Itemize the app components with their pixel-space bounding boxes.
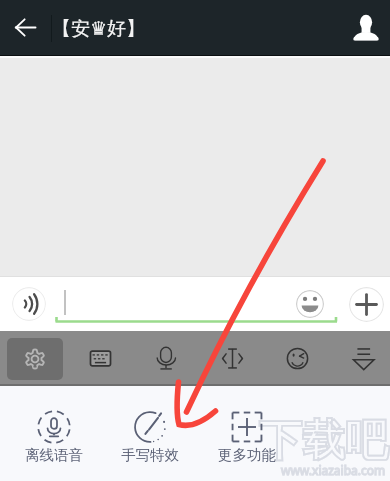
button[interactable]: Stickers [275, 336, 319, 380]
button[interactable]: More features [203, 410, 291, 480]
button[interactable]: More options [349, 287, 384, 322]
button[interactable]: Emoji [296, 290, 324, 318]
button[interactable]: Contact profile [342, 0, 390, 55]
button[interactable]: Hide keyboard [341, 336, 385, 380]
button[interactable]: Offline voice [10, 410, 98, 480]
button[interactable]: Input settings [7, 338, 63, 380]
staticText: 手写特效 [121, 446, 179, 464]
staticText: www.xiazaiba.com [281, 462, 386, 478]
staticText: 【安♛好】 [52, 17, 146, 41]
button[interactable]: Text cursor [210, 336, 254, 380]
button[interactable]: Voice message [12, 287, 46, 321]
button[interactable]: Handwriting effects [106, 410, 194, 480]
button[interactable]: Keyboard [78, 336, 122, 380]
button[interactable]: Voice input [144, 336, 188, 380]
button[interactable]: Back [0, 0, 50, 55]
staticText: 离线语音 [25, 446, 83, 464]
staticText: 更多功能 [218, 446, 276, 464]
staticText: 下载吧 [259, 414, 388, 468]
